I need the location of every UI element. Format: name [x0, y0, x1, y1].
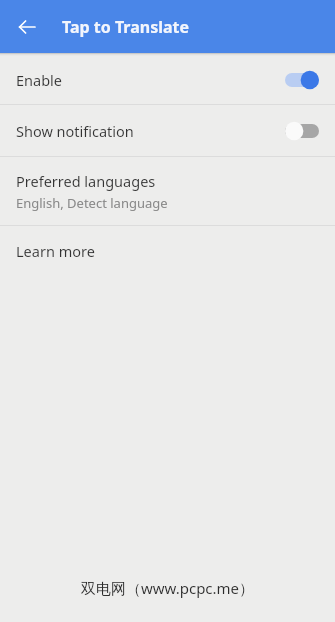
staticText: English, Detect language — [16, 194, 168, 212]
button[interactable]: Enable — [0, 56, 335, 104]
staticText: Preferred languages — [16, 171, 156, 191]
button[interactable]: Preferred languages — [0, 157, 335, 225]
staticText: Learn more — [16, 241, 95, 261]
staticText: Tap to Translate — [62, 16, 190, 38]
staticText: Show notification — [16, 121, 134, 141]
button[interactable]: Learn more — [0, 226, 335, 276]
button[interactable]: Show notification — [0, 105, 335, 156]
staticText: Enable — [16, 70, 62, 90]
button[interactable]: Back — [11, 11, 43, 43]
staticText: 双电网（www.pcpc.me） — [0, 578, 335, 598]
